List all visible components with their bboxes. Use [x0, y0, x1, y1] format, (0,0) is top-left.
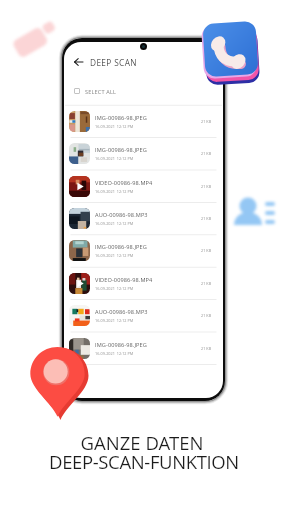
staticText: 21 KB — [201, 119, 212, 124]
staticText: 16-09-2021 12:12 PM — [95, 124, 134, 129]
staticText: IMG-00986-98.JPEG — [95, 243, 147, 251]
staticText: GANZE DATEN — [0, 430, 286, 455]
button[interactable]: VIDEO-00986-98.MP4 — [64, 267, 223, 299]
other: Back — [74, 57, 84, 67]
staticText: DEEP-SCAN-FUNKTION — [0, 449, 288, 474]
staticText: 21 KB — [201, 184, 212, 189]
button[interactable]: Phone — [196, 16, 268, 86]
staticText: 16-09-2021 12:12 PM — [95, 189, 134, 194]
staticText: 21 KB — [201, 151, 212, 156]
button[interactable]: IMG-00986-98.JPEG — [64, 137, 223, 169]
staticText: 21 KB — [201, 346, 212, 351]
staticText: IMG-00986-98.JPEG — [95, 114, 147, 122]
button[interactable]: VIDEO-00986-98.MP4 — [64, 170, 223, 202]
button[interactable]: IMG-00986-98.JPEG — [64, 332, 223, 364]
button[interactable]: Back — [64, 49, 223, 75]
staticText: 21 KB — [201, 281, 212, 286]
button[interactable]: SELECT ALL — [64, 83, 223, 99]
staticText: 16-09-2021 12:12 PM — [95, 221, 134, 226]
button[interactable]: IMG-00986-98.JPEG — [64, 105, 223, 137]
button[interactable]: AUO-00986-98.MP3 — [64, 202, 223, 234]
staticText: SELECT ALL — [85, 88, 117, 95]
staticText: 16-09-2021 12:12 PM — [95, 156, 134, 161]
staticText: 16-09-2021 12:12 PM — [95, 253, 134, 258]
staticText: VIDEO-00986-98.MP4 — [95, 276, 153, 284]
staticText: 21 KB — [201, 313, 212, 318]
staticText: 16-09-2021 12:12 PM — [95, 318, 134, 323]
staticText: AUO-00986-98.MP3 — [95, 211, 148, 219]
staticText: 21 KB — [201, 216, 212, 221]
staticText: 16-09-2021 12:12 PM — [95, 351, 134, 356]
staticText: IMG-00986-98.JPEG — [95, 341, 147, 349]
staticText: AUO-00986-98.MP3 — [95, 308, 148, 316]
button[interactable]: IMG-00986-98.JPEG — [64, 234, 223, 266]
staticText: 21 KB — [201, 248, 212, 253]
button[interactable]: AUO-00986-98.MP3 — [64, 299, 223, 331]
staticText: DEEP SCAN — [90, 57, 137, 68]
staticText: 16-09-2021 12:12 PM — [95, 286, 134, 291]
staticText: IMG-00986-98.JPEG — [95, 146, 147, 154]
staticText: VIDEO-00986-98.MP4 — [95, 179, 153, 187]
